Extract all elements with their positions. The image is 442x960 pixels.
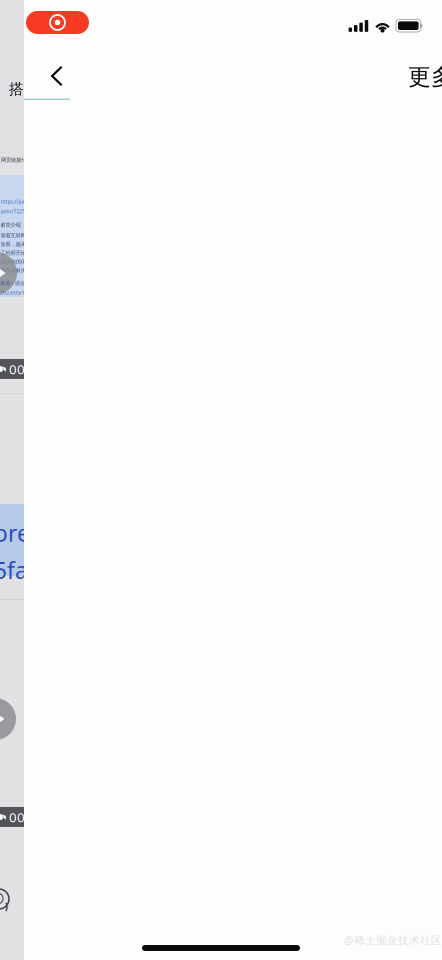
staticText: 端性能优化的相关 <box>0 259 40 265</box>
staticText: 问题与解决方案。 <box>0 267 40 274</box>
staticText: 5fa <box>0 555 28 585</box>
staticText: 2023/05/12 10:24 <box>0 289 42 296</box>
staticText: https://juejin.cn/ <box>0 198 39 205</box>
button[interactable]: 更多 <box>408 55 442 99</box>
staticText: post/72258fa9 <box>0 208 36 215</box>
staticText: 00 <box>9 808 25 826</box>
staticText: 随着互联网的快速 <box>0 232 40 239</box>
staticText: 发展，越来越多的 <box>0 241 40 248</box>
staticText: 网页链接分享内容 <box>1 157 41 163</box>
staticText: · <box>1 148 2 155</box>
staticText: @稀土掘金技术社区 <box>344 933 442 947</box>
staticText: 工程师开始关注前 <box>0 250 40 256</box>
staticText: 来源：掘金技术社区 <box>0 280 45 287</box>
staticText: 更多 <box>408 63 442 91</box>
button[interactable]: Back <box>35 54 79 98</box>
staticText: 前言介绍 <box>0 222 20 228</box>
staticText: 搭子 <box>9 80 39 98</box>
staticText: ore <box>0 518 30 548</box>
staticText: 00 <box>9 360 25 378</box>
